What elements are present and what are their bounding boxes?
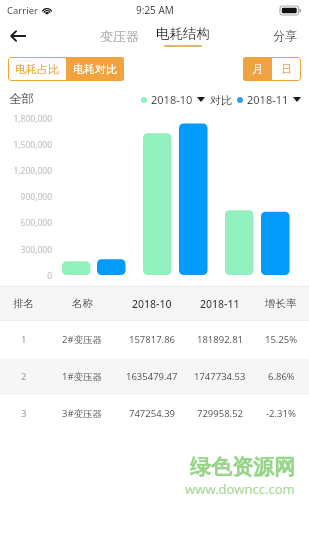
button[interactable]: 全部 bbox=[9, 91, 34, 107]
button[interactable]: 月 bbox=[243, 57, 272, 81]
staticText: 绿色资源网 bbox=[190, 454, 295, 480]
staticText: 747254.39 bbox=[129, 407, 176, 420]
staticText: 1#变压器 bbox=[62, 370, 103, 383]
staticText: 3#变压器 bbox=[62, 407, 103, 420]
button[interactable]: 日 bbox=[272, 57, 301, 81]
button[interactable]: 电耗占比 bbox=[8, 57, 66, 81]
staticText: 2#变压器 bbox=[62, 333, 103, 346]
staticText: 电耗对比 bbox=[73, 62, 117, 76]
staticText: 1635479.47 bbox=[126, 370, 178, 383]
staticText: 15.25% bbox=[265, 333, 298, 346]
button[interactable]: 变压器 bbox=[93, 24, 146, 48]
staticText: 日 bbox=[281, 62, 292, 76]
button[interactable]: 2018-11 bbox=[247, 92, 301, 107]
staticText: 1,200,000 bbox=[2, 165, 52, 177]
staticText: 名称 bbox=[72, 297, 93, 310]
staticText: Carrier bbox=[7, 4, 38, 17]
button[interactable]: 电耗结构 bbox=[149, 23, 217, 49]
staticText: 变压器 bbox=[100, 28, 139, 44]
staticText: 1 bbox=[21, 333, 27, 346]
staticText: 300,000 bbox=[2, 244, 52, 256]
staticText: 2018-10 bbox=[132, 297, 172, 311]
button[interactable]: 电耗对比 bbox=[66, 57, 124, 81]
button[interactable]: 2 bbox=[0, 358, 309, 395]
staticText: 2018-11 bbox=[247, 92, 289, 107]
staticText: 729958.52 bbox=[197, 407, 244, 420]
staticText: 分享 bbox=[273, 28, 297, 43]
staticText: 全部 bbox=[9, 91, 34, 107]
staticText: 181892.81 bbox=[197, 333, 244, 346]
staticText: 1747734.53 bbox=[194, 370, 246, 383]
staticText: 对比 bbox=[210, 93, 232, 107]
staticText: 排名 bbox=[13, 297, 34, 310]
staticText: 2018-10 bbox=[151, 92, 193, 107]
staticText: 1,500,000 bbox=[2, 139, 52, 151]
staticText: 900,000 bbox=[2, 191, 52, 203]
button[interactable]: 3 bbox=[0, 395, 309, 432]
staticText: 电耗占比 bbox=[15, 62, 59, 76]
staticText: 0 bbox=[2, 270, 52, 282]
staticText: 2018-11 bbox=[200, 297, 240, 311]
button[interactable]: 排名 bbox=[0, 287, 309, 320]
staticText: 600,000 bbox=[2, 217, 52, 229]
button[interactable]: 2018-10 bbox=[151, 92, 205, 107]
staticText: 增长率 bbox=[265, 297, 297, 310]
staticText: 9:25 AM bbox=[136, 3, 174, 17]
button[interactable]: 1 bbox=[0, 321, 309, 358]
staticText: 157817.86 bbox=[129, 333, 176, 346]
button[interactable]: 分享 bbox=[269, 24, 301, 47]
staticText: www.downcc.com bbox=[185, 480, 295, 498]
staticText: 月 bbox=[252, 62, 263, 76]
staticText: 3 bbox=[21, 407, 27, 420]
staticText: -2.31% bbox=[266, 407, 296, 420]
staticText: 1,800,000 bbox=[2, 113, 52, 125]
staticText: 电耗结构 bbox=[156, 25, 210, 42]
staticText: 6.86% bbox=[268, 370, 295, 383]
button[interactable]: Back bbox=[3, 21, 33, 51]
staticText: 2 bbox=[21, 370, 27, 383]
